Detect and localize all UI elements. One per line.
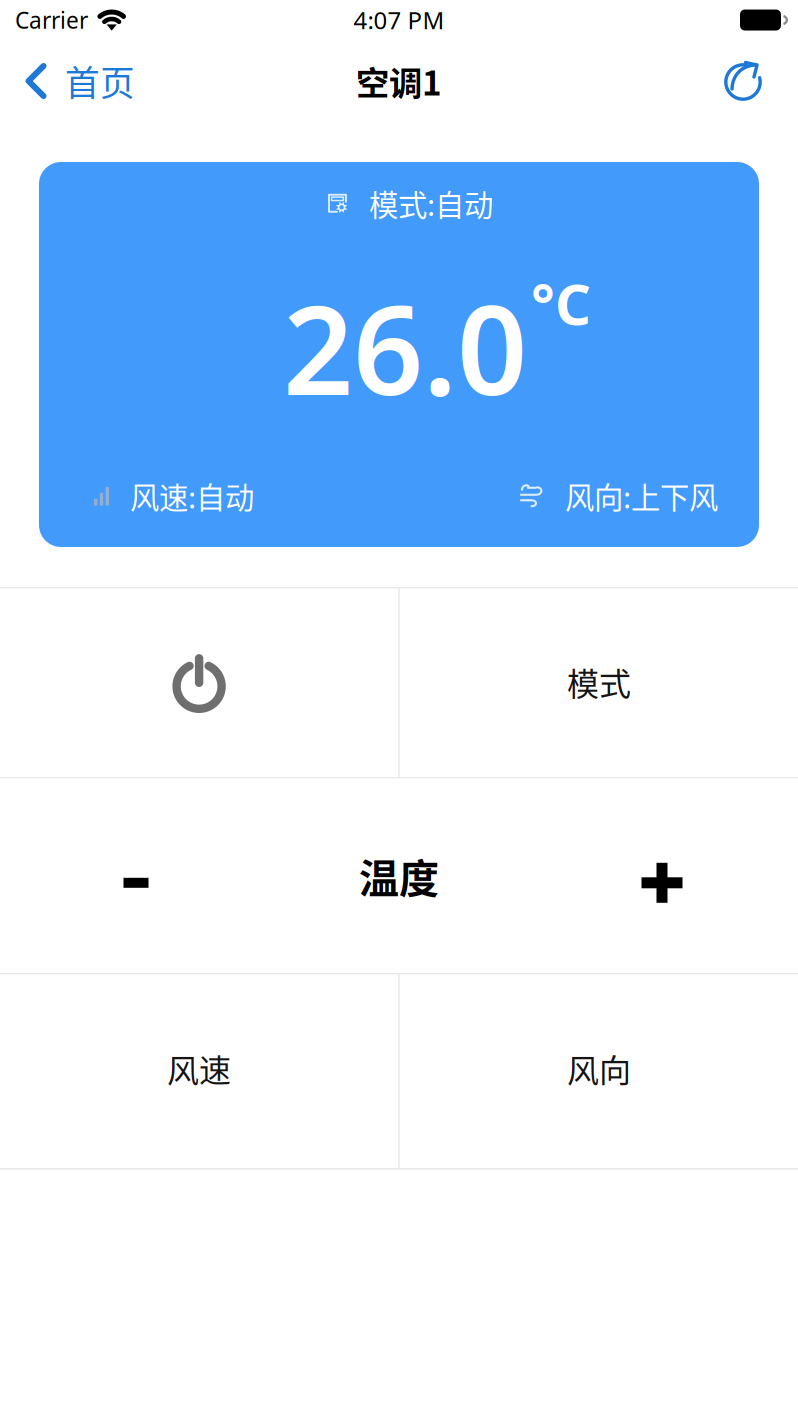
staticText: Carrier (15, 5, 88, 35)
staticText: 风向:上下风 (565, 474, 718, 517)
button[interactable]: 降低温度 (0, 779, 272, 973)
button[interactable]: 首页 (0, 45, 151, 117)
staticText: 温度 (359, 847, 439, 905)
staticText: 模式:自动 (369, 182, 493, 224)
staticText: 首页 (65, 56, 135, 106)
staticText: 空调1 (356, 57, 442, 105)
staticText: 4:07 PM (353, 4, 444, 36)
button[interactable]: 风速 (0, 975, 398, 1168)
button[interactable]: 电源 (0, 589, 398, 777)
staticText: 风向 (567, 1045, 631, 1091)
button[interactable]: 风向 (400, 975, 798, 1168)
staticText: 风速 (167, 1045, 231, 1091)
button[interactable]: 升高温度 (526, 779, 798, 973)
staticText: 风速:自动 (130, 474, 254, 517)
staticText: 模式 (567, 659, 631, 705)
button[interactable]: 温度 (272, 779, 526, 973)
staticText: °C (531, 266, 591, 340)
button[interactable]: 模式 (400, 589, 798, 777)
staticText: 26.0 (283, 266, 527, 429)
button[interactable]: 分享 (703, 50, 798, 112)
